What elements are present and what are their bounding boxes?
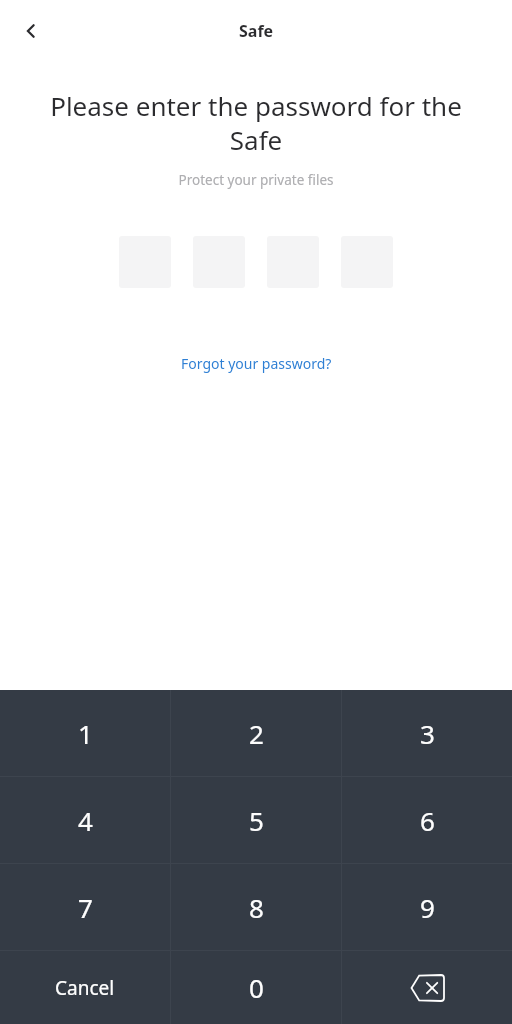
staticText: Forgot your password? <box>181 354 332 373</box>
staticText: 7 <box>78 890 93 925</box>
button[interactable]: 9 <box>342 864 512 950</box>
button[interactable]: Back <box>8 8 54 54</box>
button[interactable]: 4 <box>0 777 170 863</box>
staticText: 6 <box>420 803 435 838</box>
button[interactable]: 5 <box>171 777 341 863</box>
staticText: 4 <box>78 803 93 838</box>
button[interactable]: Forgot your password? <box>173 350 340 377</box>
button[interactable]: 0 <box>171 951 341 1024</box>
staticText: 2 <box>249 716 264 751</box>
button[interactable]: 6 <box>342 777 512 863</box>
button[interactable]: Cancel <box>0 951 170 1024</box>
button[interactable]: 1 <box>0 690 170 776</box>
staticText: 5 <box>249 803 264 838</box>
staticText: Safe <box>239 20 274 42</box>
staticText: 8 <box>249 890 264 925</box>
staticText: 0 <box>249 970 264 1005</box>
staticText: Cancel <box>55 975 115 1001</box>
staticText: 1 <box>78 716 93 751</box>
button[interactable]: 3 <box>342 690 512 776</box>
button[interactable]: 7 <box>0 864 170 950</box>
button[interactable]: Backspace <box>342 951 512 1024</box>
button[interactable]: 8 <box>171 864 341 950</box>
button[interactable]: 2 <box>171 690 341 776</box>
staticText: Please enter the password for the Safe <box>30 88 482 157</box>
staticText: 3 <box>420 716 435 751</box>
staticText: Protect your private files <box>0 171 512 189</box>
staticText: 9 <box>420 890 435 925</box>
